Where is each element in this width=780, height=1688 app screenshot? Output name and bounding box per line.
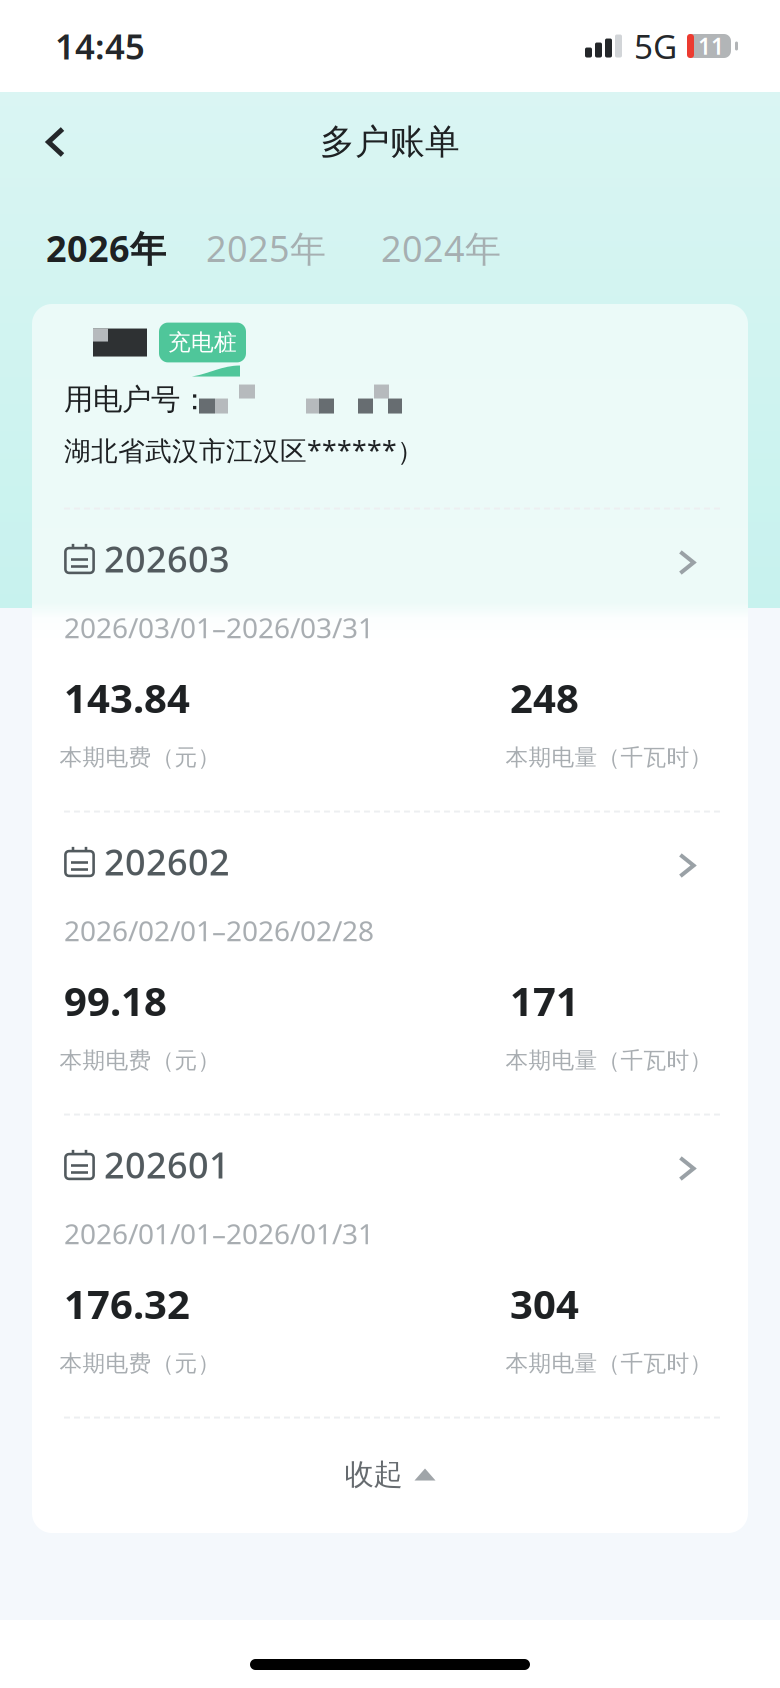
staticText: 304	[510, 1277, 579, 1330]
staticText: 多户账单	[320, 121, 460, 163]
button[interactable]: 202601	[32, 1128, 748, 1200]
staticText: 248	[510, 671, 579, 724]
staticText: 2026年	[46, 224, 166, 272]
staticText: 收起	[344, 1456, 402, 1492]
staticText: 用电户号：	[64, 381, 209, 417]
button[interactable]: 收起	[32, 1418, 748, 1530]
staticText: 充电桩	[168, 329, 237, 356]
staticText: 本期电量（千瓦时）	[505, 1047, 712, 1074]
staticText: 2026/01/01–2026/01/31	[64, 1215, 374, 1252]
staticText: 本期电费（元）	[59, 1047, 220, 1074]
staticText: 2024年	[381, 224, 501, 272]
staticText: 202603	[104, 535, 230, 582]
button[interactable]: 2025年	[166, 214, 326, 282]
staticText: 202602	[104, 838, 230, 885]
staticText: 2026/03/01–2026/03/31	[64, 609, 374, 646]
button[interactable]: 2024年	[326, 214, 501, 282]
staticText: 202601	[104, 1141, 230, 1188]
staticText: 143.84	[64, 671, 190, 724]
staticText: 2025年	[206, 224, 326, 272]
staticText: 本期电费（元）	[59, 744, 220, 771]
button[interactable]: 202603	[32, 522, 748, 594]
staticText: 5G	[634, 24, 677, 68]
staticText: 湖北省武汉市江汉区******）	[64, 432, 424, 468]
staticText: 171	[510, 974, 579, 1027]
staticText: 2026/02/01–2026/02/28	[64, 912, 374, 949]
staticText: 176.32	[64, 1277, 190, 1330]
staticText: 本期电费（元）	[59, 1350, 220, 1377]
staticText: 本期电量（千瓦时）	[505, 1350, 712, 1377]
staticText: 本期电量（千瓦时）	[505, 744, 712, 771]
staticText: 14:45	[55, 23, 145, 69]
button[interactable]: Back	[23, 110, 88, 174]
staticText: 11	[698, 31, 724, 61]
button[interactable]: 202602	[32, 825, 748, 897]
staticText: 99.18	[64, 974, 167, 1027]
button[interactable]: 2026年	[46, 214, 166, 282]
